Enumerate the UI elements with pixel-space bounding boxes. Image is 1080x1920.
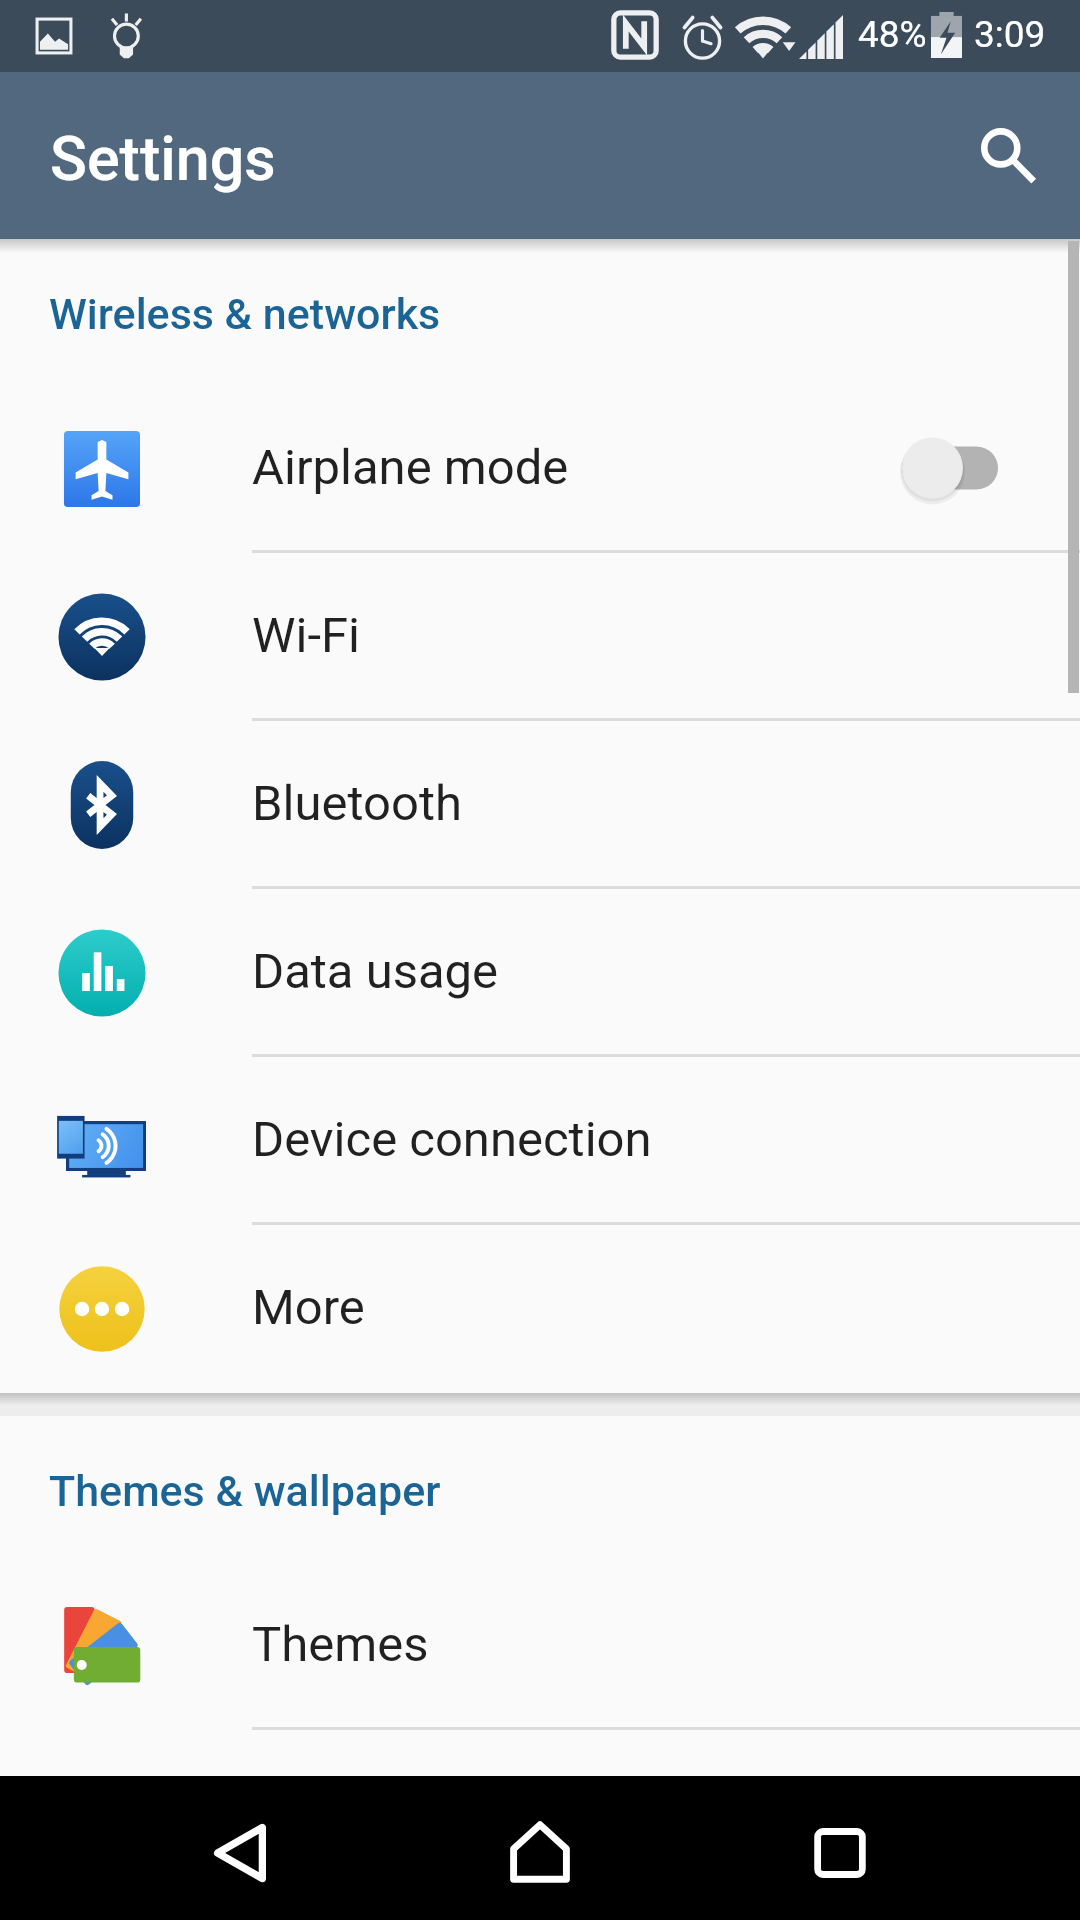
- staticText: More: [252, 1279, 1080, 1336]
- staticText: Themes: [252, 1616, 1080, 1673]
- button[interactable]: Data usage: [0, 889, 1080, 1057]
- staticText: 3:09: [974, 13, 1046, 56]
- staticText: Themes & wallpaper: [49, 1466, 441, 1516]
- button[interactable]: Back: [180, 1793, 300, 1913]
- button[interactable]: Device connection: [0, 1057, 1080, 1225]
- button[interactable]: Themes: [0, 1562, 1080, 1730]
- staticText: Wireless & networks: [49, 289, 441, 339]
- button[interactable]: Airplane mode: [0, 385, 1080, 553]
- staticText: Bluetooth: [252, 775, 1080, 832]
- button[interactable]: Wi-Fi: [0, 553, 1080, 721]
- staticText: Settings: [50, 123, 276, 194]
- staticText: Airplane mode: [252, 439, 898, 496]
- button[interactable]: More: [0, 1225, 1080, 1393]
- staticText: Device connection: [252, 1111, 1080, 1168]
- button[interactable]: Recents: [780, 1793, 900, 1913]
- button[interactable]: Home: [480, 1792, 600, 1912]
- staticText: Data usage: [252, 943, 1080, 1000]
- button[interactable]: Bluetooth: [0, 721, 1080, 889]
- staticText: 48%: [858, 13, 927, 56]
- button[interactable]: Search: [952, 104, 1056, 208]
- staticText: Wi-Fi: [252, 607, 1080, 664]
